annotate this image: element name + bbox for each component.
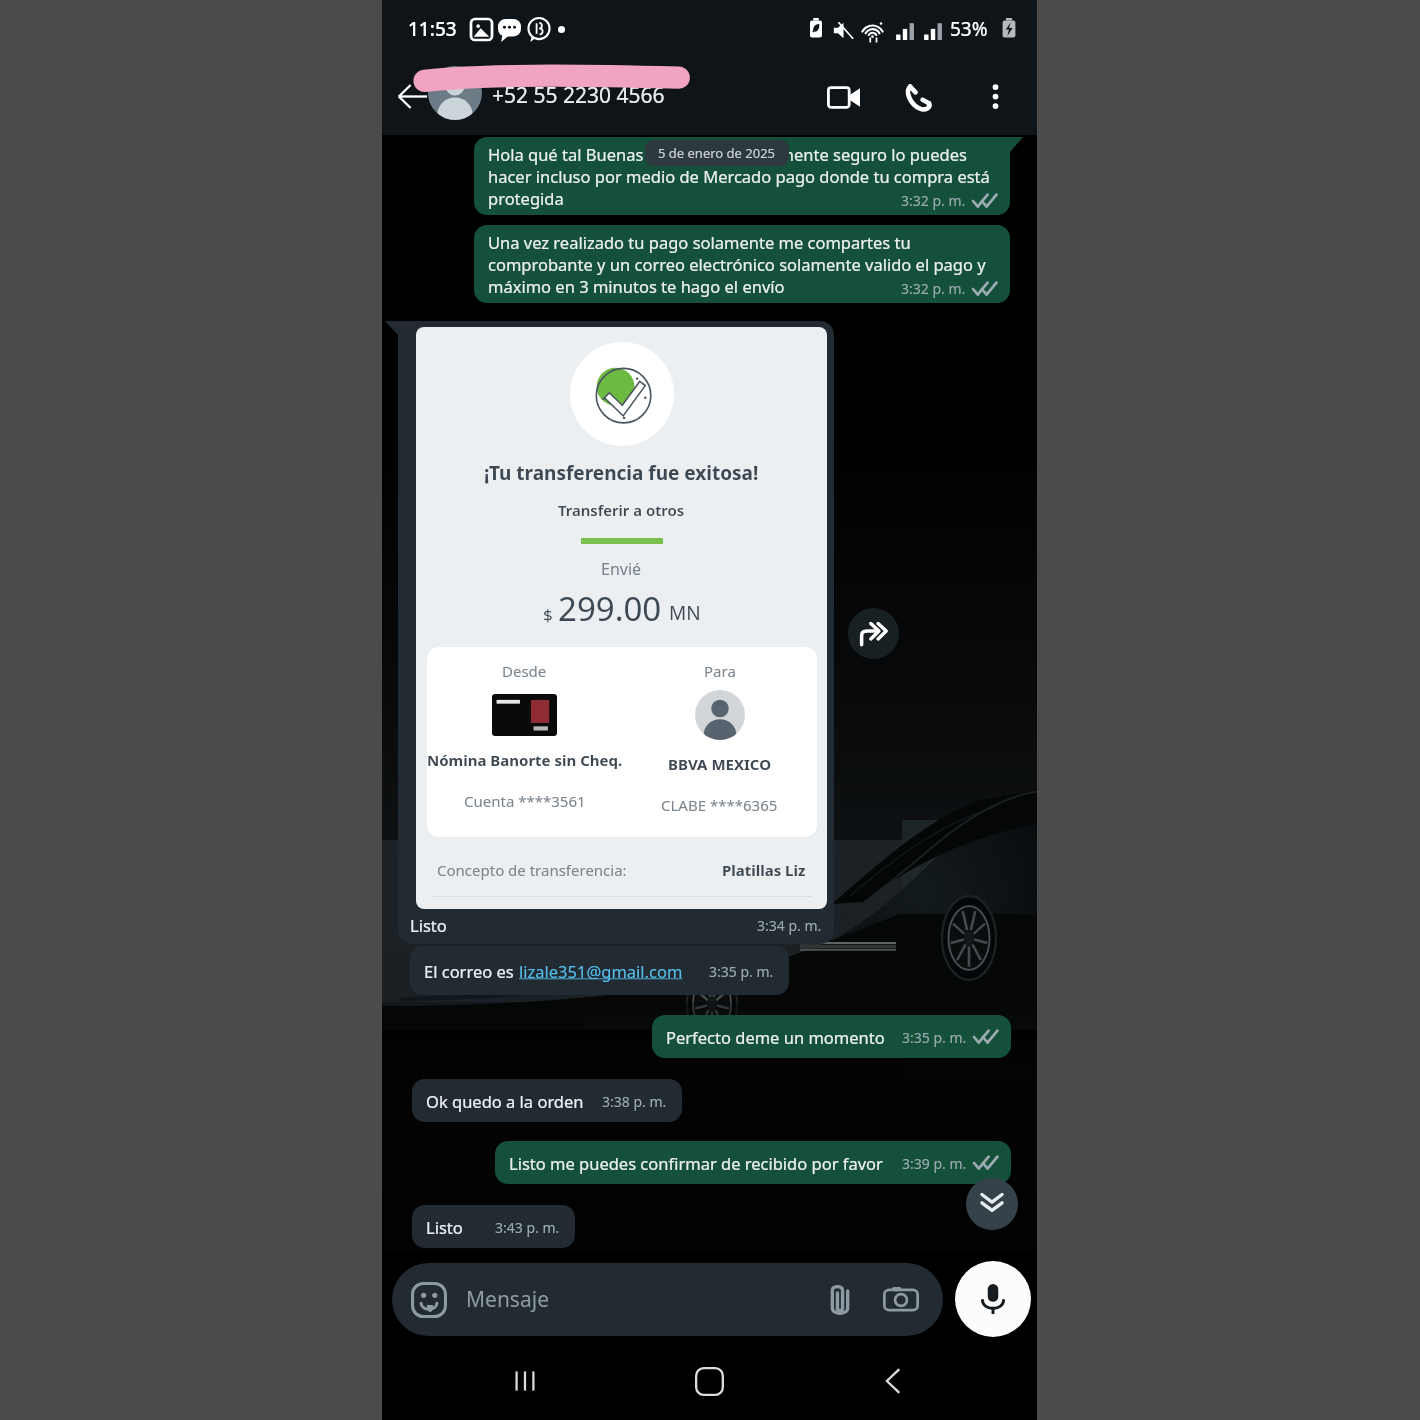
button[interactable]: More options — [967, 68, 1023, 124]
button[interactable]: Voice message — [955, 1261, 1031, 1337]
button[interactable]: Mensaje — [392, 1263, 943, 1336]
staticText: Mensaje — [466, 1285, 549, 1314]
staticText: Hola qué tal Buenas tardes claro totalme… — [488, 143, 967, 165]
button[interactable]: Listo me puedes confirmar de recibido po… — [495, 1141, 1011, 1184]
staticText: Envié — [601, 558, 642, 580]
staticText: Para — [704, 661, 736, 681]
button[interactable]: Scroll to bottom — [966, 1178, 1018, 1230]
staticText: Perfecto deme un momento — [666, 1026, 885, 1048]
staticText: MN — [669, 600, 701, 626]
button[interactable]: Forward — [848, 608, 899, 659]
staticText: 3:38 p. m. — [602, 1092, 667, 1111]
staticText: 3:43 p. m. — [495, 1218, 560, 1237]
staticText: comprobante y un correo electrónico sola… — [488, 253, 986, 275]
staticText: 3:35 p. m. — [709, 962, 774, 981]
staticText: protegida — [488, 187, 564, 209]
staticText: +52 55 2230 4566 — [492, 81, 665, 110]
staticText: máximo en 3 minutos te hago el envío — [488, 275, 785, 297]
button[interactable]: Listo — [412, 1205, 575, 1248]
button[interactable]: Una vez realizado tu pago solamente me c… — [474, 225, 1010, 303]
button[interactable]: El correo es — [410, 946, 789, 995]
button[interactable]: ¡Tu transferencia fue exitosa! — [398, 321, 834, 944]
button[interactable]: Recents — [495, 1351, 555, 1411]
button[interactable]: Ok quedo a la orden — [412, 1079, 682, 1122]
button[interactable]: Camera — [879, 1278, 923, 1322]
staticText: Nómina Banorte sin Cheq... — [427, 750, 622, 770]
staticText: 3:34 p. m. — [757, 916, 822, 935]
staticText: 5 de enero de 2025 — [658, 144, 776, 162]
staticText: lizale351@gmail.com — [519, 960, 683, 982]
staticText: Transferir a otros — [558, 500, 685, 520]
button[interactable]: Back — [863, 1351, 923, 1411]
staticText: Listo — [410, 914, 447, 936]
staticText: Listo me puedes confirmar de recibido po… — [509, 1152, 883, 1174]
button[interactable]: Video call — [814, 68, 872, 126]
staticText: 11:53 — [408, 16, 457, 42]
staticText: ¡Tu transferencia fue exitosa! — [484, 460, 759, 486]
staticText: BBVA MEXICO — [668, 754, 772, 774]
staticText: El correo es — [424, 960, 519, 982]
staticText: 3:32 p. m. — [901, 279, 966, 298]
staticText: 3:39 p. m. — [902, 1154, 967, 1173]
button[interactable]: Back — [384, 68, 440, 124]
staticText: $ — [543, 603, 553, 626]
staticText: 3:35 p. m. — [902, 1028, 967, 1047]
staticText: Cuenta ****3561 — [464, 791, 586, 811]
staticText: 3:32 p. m. — [901, 191, 966, 210]
staticText: hacer incluso por medio de Mercado pago … — [488, 165, 990, 187]
button[interactable]: Attach — [818, 1278, 862, 1322]
staticText: Una vez realizado tu pago solamente me c… — [488, 231, 911, 253]
staticText: CLABE ****6365 — [661, 795, 778, 815]
staticText: Desde — [502, 661, 547, 681]
staticText: Listo — [426, 1216, 463, 1238]
staticText: Concepto de transferencia: — [437, 860, 627, 880]
button[interactable]: Hola qué tal Buenas tardes claro totalme… — [474, 137, 1010, 215]
staticText: 53% — [950, 16, 988, 42]
button[interactable]: Home — [679, 1351, 739, 1411]
button[interactable]: Voice call — [889, 68, 947, 126]
staticText: Ok quedo a la orden — [426, 1090, 584, 1112]
button[interactable]: Perfecto deme un momento — [652, 1015, 1011, 1058]
button[interactable]: Contact photo — [428, 66, 482, 120]
staticText: Platillas Liz — [722, 860, 806, 880]
staticText: 299.00 — [558, 586, 662, 631]
